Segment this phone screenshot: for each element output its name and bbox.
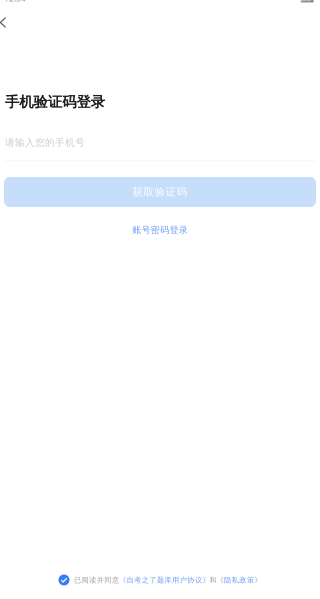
staticText: 《自考之了题库用户协议》 bbox=[119, 575, 209, 585]
staticText: 已阅读并同意 bbox=[74, 575, 119, 585]
staticText: 请输入您的手机号 bbox=[5, 136, 85, 148]
staticText: 《隐私政策》 bbox=[216, 575, 261, 585]
staticText: 12:34 bbox=[4, 0, 26, 4]
staticText: 账号密码登录 bbox=[132, 224, 188, 236]
button[interactable]: 已阅读并同意 bbox=[58, 573, 261, 587]
staticText: 获取验证码 bbox=[132, 185, 187, 199]
button[interactable]: Back bbox=[0, 4, 24, 41]
staticText: 和 bbox=[209, 575, 216, 585]
staticText: ▂▂▌ bbox=[301, 0, 316, 2]
button[interactable]: 账号密码登录 bbox=[132, 223, 188, 237]
button[interactable]: 获取验证码 bbox=[4, 177, 316, 207]
staticText: 手机验证码登录 bbox=[5, 93, 105, 111]
